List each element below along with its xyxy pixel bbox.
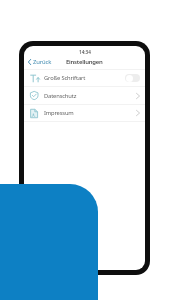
button[interactable]: Große Schriftart umschalten [125, 74, 140, 82]
staticText: Impressum [44, 109, 74, 117]
staticText: Große Schriftart [44, 74, 86, 82]
button[interactable]: Zurück [24, 58, 55, 66]
button[interactable]: Impressum [24, 105, 145, 121]
staticText: 14:34 [79, 49, 91, 55]
staticText: Datenschutz [44, 92, 77, 100]
staticText: Einstellungen [66, 58, 103, 66]
staticText: Zurück [33, 58, 52, 66]
button[interactable]: Große Schriftart [24, 70, 145, 86]
button[interactable]: Datenschutz [24, 87, 145, 104]
